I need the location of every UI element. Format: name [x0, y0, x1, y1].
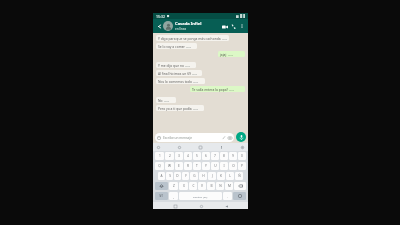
button[interactable]: V [198, 182, 206, 190]
button[interactable]: !#1 [155, 192, 168, 200]
button[interactable]: 9 [229, 152, 237, 160]
button[interactable]: Video call [220, 22, 229, 31]
button[interactable]: Back [155, 22, 163, 30]
button[interactable]: 1 [155, 152, 164, 160]
staticText: 15:2 [186, 45, 191, 48]
staticText: Z [173, 184, 175, 188]
button[interactable]: R [184, 162, 192, 170]
button[interactable]: Z [169, 182, 178, 190]
button[interactable]: Home [198, 203, 204, 209]
staticText: 15:2 [228, 53, 233, 56]
button[interactable]: More options [238, 22, 246, 30]
button[interactable]: No [156, 97, 176, 103]
button[interactable]: 4 [184, 152, 192, 160]
button[interactable]: 7 [211, 152, 219, 160]
staticText: 0 [241, 154, 243, 158]
button[interactable]: H [199, 172, 207, 180]
staticText: 15:2 [193, 107, 198, 110]
other: Camera [228, 136, 232, 140]
button[interactable]: Emoji / enter [233, 192, 246, 200]
button[interactable]: Call [229, 22, 238, 31]
button[interactable]: D [174, 172, 181, 180]
button[interactable]: M [225, 182, 233, 190]
button[interactable]: Nos lo comemos todo [156, 78, 205, 84]
button[interactable]: N [216, 182, 224, 190]
button[interactable]: Se lo voy a comer [156, 43, 197, 49]
staticText: en línea [175, 27, 187, 31]
button[interactable]: Keyboard tool 0 [156, 145, 161, 150]
button[interactable]: 3 [175, 152, 183, 160]
button[interactable]: Keyboard tool 1 [177, 145, 182, 150]
staticText: 6 [205, 154, 207, 158]
button[interactable]: . [223, 192, 232, 200]
staticText: Nos lo comemos todo [158, 79, 192, 83]
button[interactable]: Q [155, 162, 164, 170]
button[interactable]: C [189, 182, 197, 190]
staticText: Ñ [238, 174, 241, 178]
button[interactable]: K [217, 172, 225, 180]
button[interactable]: 6 [202, 152, 210, 160]
staticText: 2 [169, 154, 171, 158]
staticText: 9 [232, 154, 234, 158]
staticText: W [168, 164, 171, 168]
staticText: 7 [214, 154, 216, 158]
button[interactable]: L [226, 172, 234, 180]
staticText: A [160, 174, 163, 178]
button[interactable]: 5 [193, 152, 201, 160]
button[interactable]: Español (ES) [179, 192, 222, 200]
button[interactable]: S [166, 172, 173, 180]
staticText: O [232, 164, 235, 168]
button[interactable]: , [169, 192, 178, 200]
button[interactable]: Casada Infiel [175, 21, 220, 31]
staticText: E [178, 164, 180, 168]
button[interactable]: P [238, 162, 246, 170]
staticText: Pero yo a ti que podía [158, 106, 192, 110]
staticText: 15:2 [192, 72, 197, 75]
button[interactable]: W [165, 162, 174, 170]
staticText: G [193, 174, 196, 178]
button[interactable]: Keyboard tool 3 [219, 145, 224, 150]
staticText: C [192, 184, 195, 188]
button[interactable]: Al final hicimos un 69 [156, 70, 202, 76]
button[interactable]: Voice message [236, 132, 246, 142]
other: Attach [222, 136, 226, 140]
button[interactable]: T [193, 162, 201, 170]
staticText: 15:32 [156, 14, 165, 19]
button[interactable]: Escribe un mensaje [155, 133, 234, 142]
button[interactable]: Keyboard tool 4 [240, 145, 245, 150]
staticText: H [202, 174, 205, 178]
button[interactable]: E [175, 162, 183, 170]
button[interactable]: Shift [155, 182, 168, 190]
button[interactable]: Y digo para que se ponga más cachonda [156, 35, 229, 41]
button[interactable]: Recents [172, 203, 178, 209]
button[interactable]: I [220, 162, 228, 170]
button[interactable]: 0 [238, 152, 246, 160]
staticText: , [173, 194, 174, 199]
button[interactable]: Back [223, 203, 229, 209]
staticText: Q [158, 164, 161, 168]
button[interactable]: Backspace [234, 182, 246, 190]
button[interactable]: A [158, 172, 165, 180]
button[interactable]: F [182, 172, 189, 180]
button[interactable]: jajaj [218, 51, 245, 57]
staticText: Casada Infiel [175, 21, 202, 27]
button[interactable]: Pero yo a ti que podía [156, 105, 204, 111]
button[interactable]: 8 [220, 152, 228, 160]
button[interactable]: B [207, 182, 215, 190]
button[interactable]: J [208, 172, 216, 180]
button[interactable]: Ñ [235, 172, 243, 180]
staticText: B [210, 184, 213, 188]
button[interactable]: U [211, 162, 219, 170]
button[interactable]: 2 [165, 152, 174, 160]
button[interactable]: Te salía entera la popa? [190, 86, 245, 92]
button[interactable]: X [179, 182, 188, 190]
staticText: 8 [223, 154, 225, 158]
staticText: 15:2 [185, 64, 190, 67]
button[interactable]: Keyboard tool 2 [198, 145, 203, 150]
button[interactable]: O [229, 162, 237, 170]
staticText: J [212, 174, 213, 178]
button[interactable]: G [190, 172, 198, 180]
button[interactable]: Y me dijo que no [156, 62, 196, 68]
staticText: X [183, 184, 185, 188]
button[interactable]: Y [202, 162, 210, 170]
